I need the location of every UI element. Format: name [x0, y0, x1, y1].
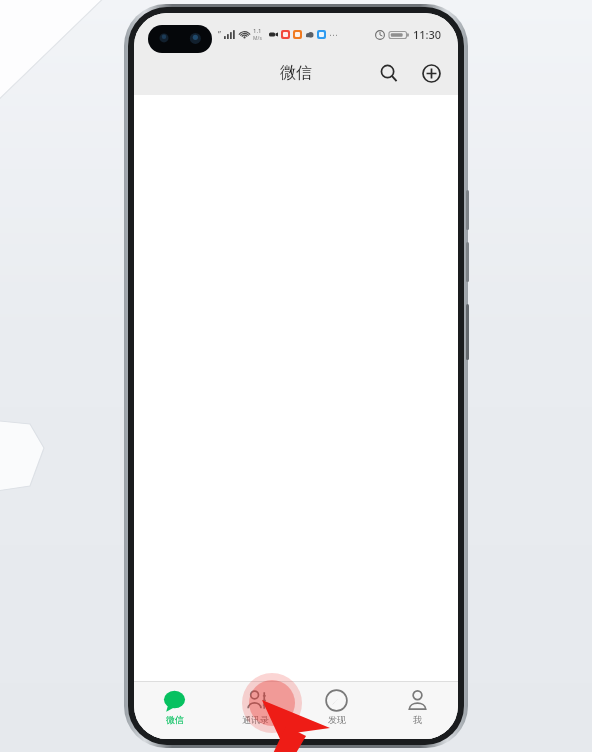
button[interactable]: Search [376, 60, 402, 86]
staticText: 发现 [328, 714, 346, 725]
staticText: 我 [413, 714, 422, 725]
staticText: 1.1 [253, 27, 262, 35]
staticText: 11:30 [413, 27, 442, 42]
button[interactable]: 微信 [134, 682, 215, 731]
staticText: 微信 [166, 714, 184, 725]
staticText: ” [218, 29, 221, 40]
staticText: 微信 [280, 63, 312, 83]
staticText: ⋯ [329, 30, 338, 40]
button[interactable]: Add [418, 60, 444, 86]
button[interactable]: 发现 [296, 682, 377, 731]
staticText: M/s [253, 35, 262, 42]
button[interactable]: 我 [377, 682, 458, 731]
staticText: 通讯录 [242, 714, 269, 725]
button[interactable]: 通讯录 [215, 682, 296, 731]
